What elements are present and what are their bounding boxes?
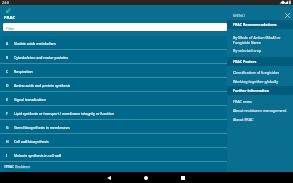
staticText: C: [6, 69, 9, 74]
button[interactable]: C: [0, 64, 293, 78]
button[interactable]: F: [0, 106, 293, 120]
staticText: Further information: [233, 88, 270, 93]
button[interactable]: Disclaimer: [15, 165, 31, 169]
staticText: D: [6, 83, 9, 88]
staticText: I: [6, 153, 8, 158]
staticText: Amino acids and protein synthesis: [14, 83, 71, 88]
staticText: FRAC Posters: [233, 59, 257, 64]
button[interactable]: Recent apps: [174, 172, 192, 183]
staticText: FRAC news: [233, 99, 252, 104]
button[interactable]: B: [0, 50, 293, 64]
staticText: FRAC: [4, 15, 16, 21]
staticText: About resistance management: [233, 108, 287, 113]
button[interactable]: A: [0, 36, 293, 50]
button[interactable]: Working together globally: [227, 77, 293, 86]
button[interactable]: D: [0, 78, 293, 92]
button[interactable]: By Mode of Action (MoA) or Fungicide Nam…: [227, 33, 293, 46]
staticText: G: [6, 125, 9, 130]
button[interactable]: H: [0, 134, 293, 148]
button[interactable]: G: [0, 120, 293, 134]
button[interactable]: Home: [137, 172, 155, 183]
staticText: E: [6, 97, 8, 102]
staticText: Signal transduction: [14, 97, 46, 102]
staticText: Nucleic acids metabolism: [14, 41, 56, 46]
staticText: MENU: [233, 13, 245, 18]
button[interactable]: FRAC Posters: [227, 57, 293, 66]
staticText: F: [6, 111, 8, 116]
staticText: Classification of fungicides: [233, 70, 279, 75]
button[interactable]: Back: [100, 172, 118, 183]
staticText: Sterol biosynthesis in membranes: [14, 125, 70, 130]
staticText: Melanin synthesis in cell wall: [14, 153, 62, 158]
staticText: FRAC Recommendations: [233, 22, 277, 27]
button[interactable]: Filter: [3, 23, 227, 31]
button[interactable]: By selected crop: [227, 46, 293, 55]
staticText: Lipid synthesis or transport / membrane …: [14, 111, 115, 116]
staticText: 24:8: [2, 0, 9, 5]
staticText: Respiration: [14, 69, 33, 74]
button[interactable]: I: [0, 148, 293, 162]
button[interactable]: Close menu: [285, 13, 290, 18]
staticText: Cell wall biosynthesis: [14, 139, 49, 144]
staticText: About FRAC: [233, 117, 254, 122]
staticText: A: [6, 41, 9, 46]
button[interactable]: FRAC news: [227, 97, 293, 106]
staticText: B: [6, 55, 9, 60]
staticText: Working together globally: [233, 79, 279, 84]
button[interactable]: FRAC Recommendations: [227, 20, 293, 29]
staticText: By selected crop: [233, 48, 262, 53]
staticText: Filter: [6, 26, 15, 31]
button[interactable]: E: [0, 92, 293, 106]
button[interactable]: Classification of fungicides: [227, 68, 293, 77]
staticText: ©FRAC: [4, 165, 15, 169]
staticText: H: [6, 139, 9, 144]
staticText: Cytoskeleton and motor proteins: [14, 55, 69, 60]
button[interactable]: About resistance management: [227, 106, 293, 115]
button[interactable]: Further information: [227, 86, 293, 95]
staticText: By Mode of Action (MoA) or Fungicide Nam…: [233, 35, 281, 45]
button[interactable]: About FRAC: [227, 115, 293, 124]
